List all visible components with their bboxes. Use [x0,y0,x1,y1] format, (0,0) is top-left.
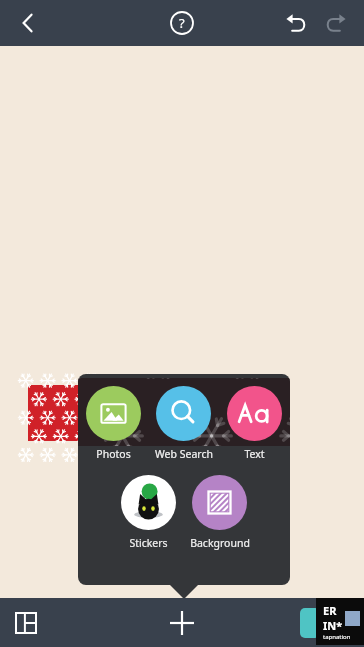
button[interactable]: Help [160,1,204,45]
button[interactable]: Redo [316,3,356,43]
button[interactable]: Text [219,386,290,461]
staticText: Background [190,536,250,550]
button[interactable]: Color [300,608,320,638]
button[interactable]: Layouts [4,601,48,645]
button[interactable]: Background [184,475,255,550]
staticText: Web Search [155,447,213,461]
staticText: Stickers [129,536,168,550]
button[interactable]: Stickers [113,475,184,550]
button[interactable]: Add [158,599,206,647]
button[interactable]: Back [6,1,50,45]
staticText: tapnation [323,633,351,641]
staticText: IN* [323,618,343,633]
staticText: Text [244,447,265,461]
button[interactable]: Web Search [148,386,219,461]
button[interactable]: Snowflake sticker [28,385,80,441]
staticText: ER [323,603,337,618]
staticText: ? [179,14,185,32]
button[interactable]: Undo [276,3,316,43]
staticText: Photos [96,447,131,461]
button[interactable]: Photos [78,386,148,461]
